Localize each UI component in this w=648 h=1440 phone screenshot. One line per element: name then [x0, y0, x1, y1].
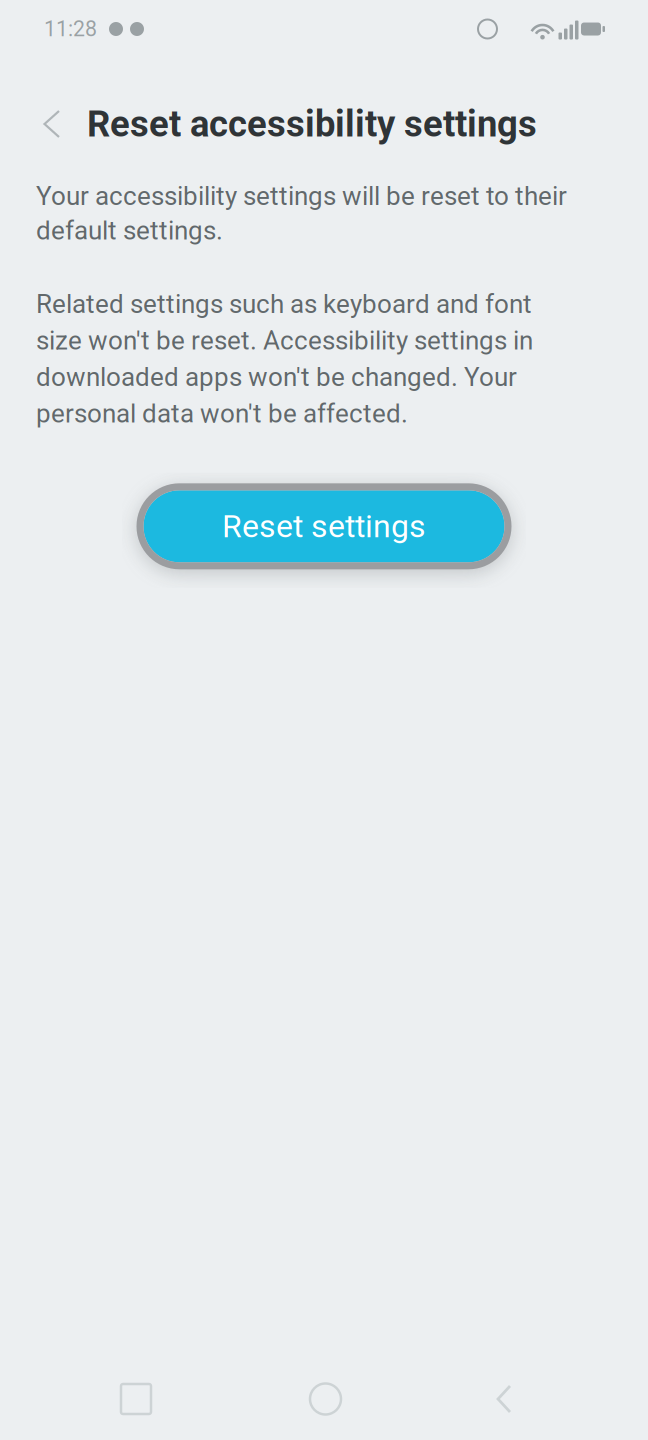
button[interactable]: Reset settings — [140, 487, 508, 566]
staticText: Reset settings — [222, 508, 426, 545]
button[interactable]: Home — [279, 1358, 371, 1440]
staticText: Related settings such as keyboard and fo… — [36, 289, 533, 429]
staticText: 11:28 — [44, 16, 97, 41]
button[interactable]: Recent apps — [90, 1358, 182, 1440]
staticText: Reset accessibility settings — [87, 103, 537, 145]
staticText: Your accessibility settings will be rese… — [36, 181, 567, 246]
button[interactable]: Back — [458, 1358, 550, 1440]
button[interactable]: Back — [33, 100, 71, 148]
